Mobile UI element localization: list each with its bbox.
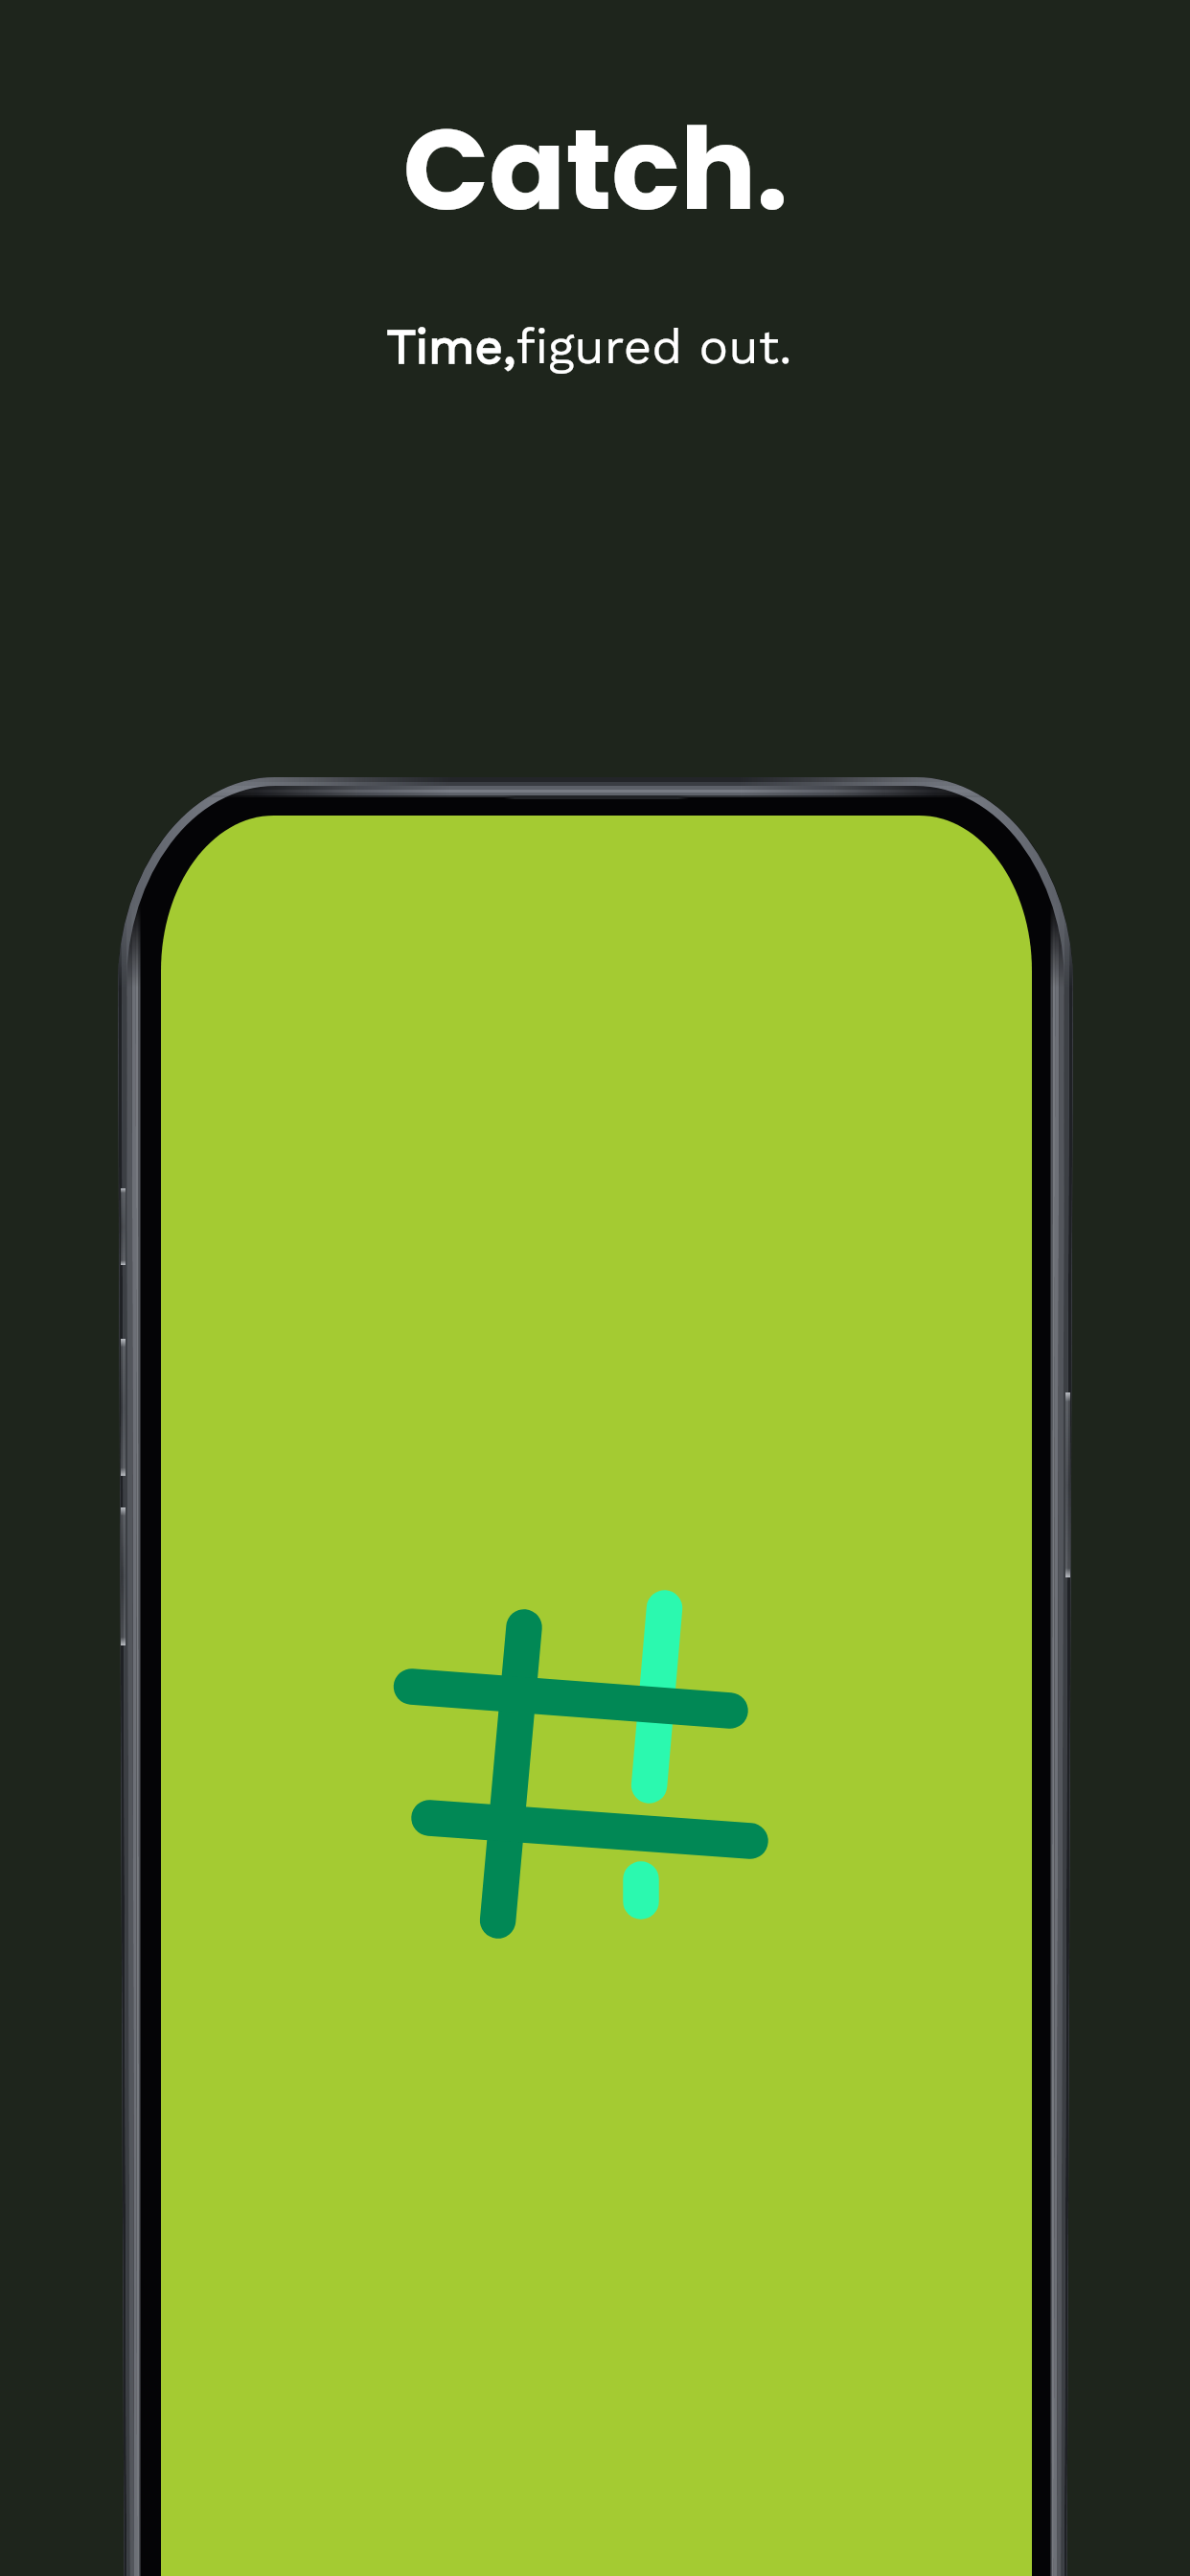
button[interactable]: Catch. (402, 90, 789, 248)
staticText: Catch. (402, 90, 789, 248)
button[interactable]: Open Catch app preview (161, 816, 1032, 2576)
button[interactable]: Time,figured out. (386, 318, 792, 376)
staticText: Time,figured out. (386, 318, 792, 376)
